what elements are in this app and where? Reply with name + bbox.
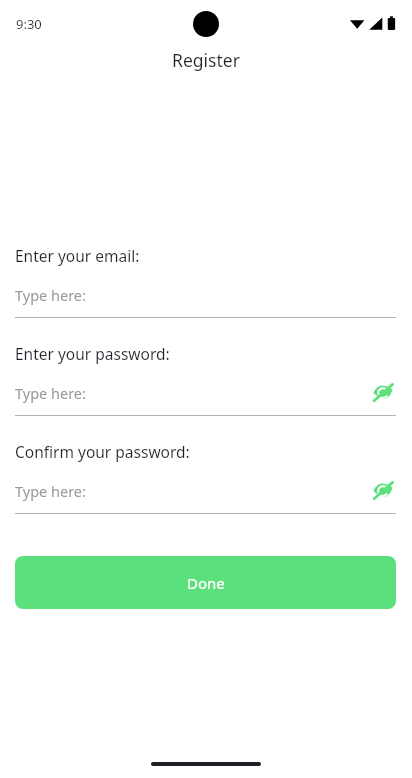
button[interactable]: Done [15, 556, 396, 609]
staticText: Type here: [15, 285, 86, 305]
button[interactable]: Toggle password visibility [370, 478, 396, 504]
staticText: Done [187, 573, 225, 593]
staticText: Type here: [15, 383, 86, 403]
staticText: Enter your email: [15, 245, 140, 266]
button[interactable]: Toggle password visibility [370, 380, 396, 406]
staticText: Confirm your password: [15, 441, 190, 462]
staticText: 9:30 [16, 15, 42, 33]
staticText: Type here: [15, 481, 86, 501]
staticText: Register [0, 48, 412, 72]
staticText: Enter your password: [15, 343, 170, 364]
